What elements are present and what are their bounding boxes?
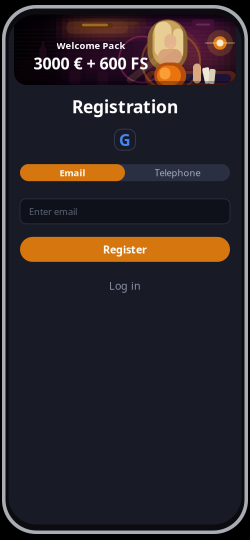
button[interactable]: Enter email [20,199,230,224]
button[interactable]: Email [20,164,125,181]
staticText: G [119,129,131,150]
staticText: Telephone [154,166,200,179]
staticText: 3000 € + 600 FS [33,53,148,74]
staticText: Enter email [29,205,77,217]
button[interactable]: Telephone [125,164,230,181]
button[interactable]: Register [20,237,230,262]
staticText: Log in [109,278,141,293]
staticText: Register [103,242,147,256]
staticText: Registration [72,95,178,118]
staticText: Welcome Pack [56,39,125,52]
staticText: Email [59,166,85,179]
button[interactable]: Log in [95,273,155,298]
button[interactable]: Sign in with Google [114,129,135,150]
